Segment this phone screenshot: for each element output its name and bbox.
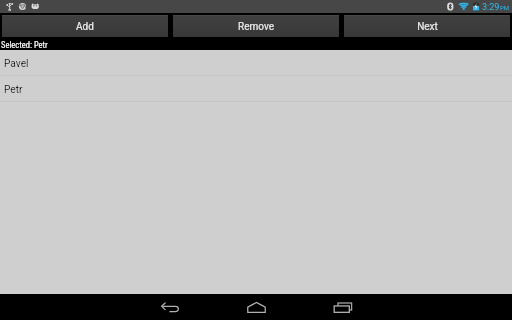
staticText: Add (76, 21, 94, 33)
staticText: Selected: Petr (1, 40, 48, 50)
staticText: Petr (4, 84, 23, 96)
button[interactable]: Add (2, 15, 168, 37)
staticText: Next (417, 21, 438, 33)
button[interactable]: Pavel (0, 50, 512, 76)
staticText: Remove (238, 21, 274, 33)
staticText: PM (500, 4, 510, 11)
staticText: 3:29 (482, 2, 500, 13)
button[interactable]: Petr (0, 76, 512, 102)
button[interactable]: Home (234, 294, 278, 320)
button[interactable]: Next (344, 15, 510, 37)
button[interactable]: Remove (173, 15, 339, 37)
button[interactable]: Recent apps (321, 294, 365, 320)
button[interactable]: Back (148, 294, 192, 320)
staticText: Pavel (4, 58, 29, 70)
